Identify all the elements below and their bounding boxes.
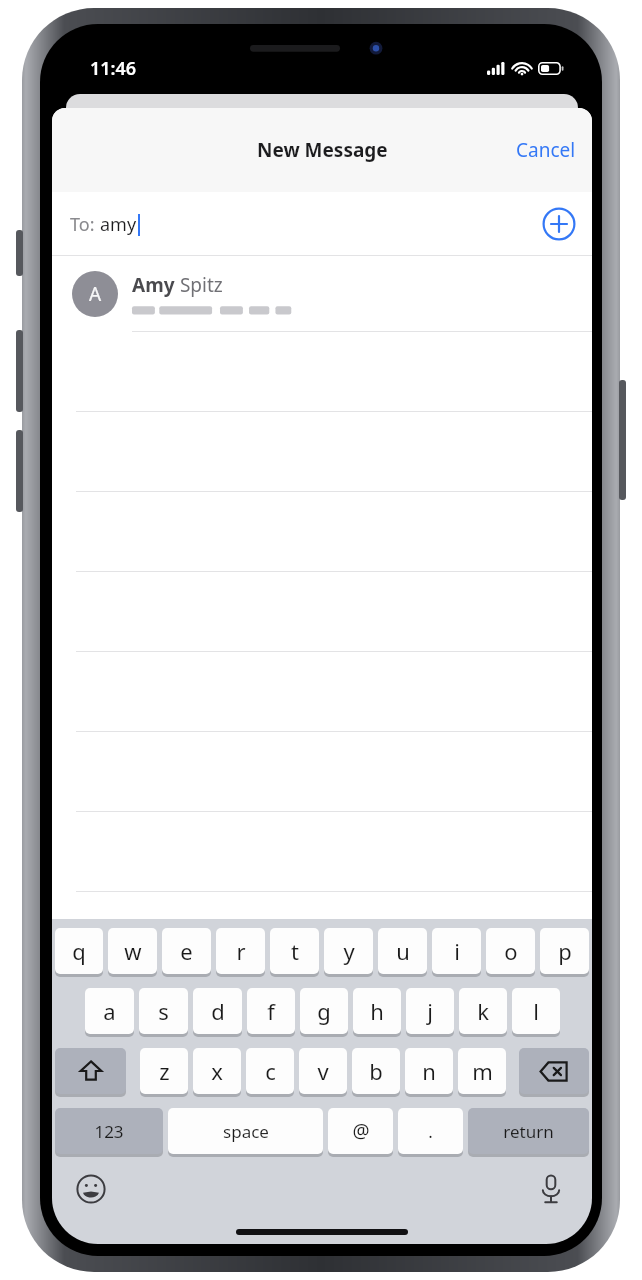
staticText: s	[158, 996, 169, 1026]
staticText: Spitz	[175, 272, 223, 298]
button[interactable]: r	[216, 928, 265, 978]
button[interactable]: q	[55, 928, 103, 978]
staticText: u	[396, 936, 410, 966]
button[interactable]: w	[108, 928, 157, 978]
button[interactable]: a	[85, 988, 134, 1038]
button[interactable]: 123	[55, 1108, 163, 1158]
staticText: q	[72, 936, 86, 966]
staticText: New Message	[257, 137, 388, 163]
button[interactable]: space	[168, 1108, 323, 1158]
button[interactable]: l	[512, 988, 560, 1038]
staticText: 11:46	[90, 56, 137, 81]
staticText: d	[211, 996, 225, 1026]
staticText: To:	[70, 212, 100, 237]
button[interactable]: t	[270, 928, 319, 978]
button[interactable]: g	[300, 988, 348, 1038]
staticText: j	[427, 996, 433, 1026]
button[interactable]: x	[193, 1048, 241, 1098]
button[interactable]: @	[328, 1108, 393, 1158]
button[interactable]: f	[247, 988, 295, 1038]
button[interactable]: z	[140, 1048, 188, 1098]
button[interactable]: A	[52, 256, 592, 332]
staticText: g	[317, 996, 331, 1026]
button[interactable]: h	[353, 988, 401, 1038]
staticText: p	[558, 936, 572, 966]
staticText: n	[422, 1056, 436, 1086]
button[interactable]: v	[299, 1048, 347, 1098]
staticText: x	[211, 1056, 223, 1086]
button[interactable]: k	[459, 988, 507, 1038]
button[interactable]: b	[352, 1048, 400, 1098]
staticText: v	[317, 1056, 329, 1086]
staticText: h	[370, 996, 384, 1026]
button[interactable]: s	[139, 988, 188, 1038]
staticText: i	[454, 936, 460, 966]
staticText: r	[236, 936, 246, 966]
staticText: A	[89, 281, 102, 307]
staticText: space	[223, 1120, 269, 1143]
button[interactable]: e	[162, 928, 211, 978]
button[interactable]: i	[432, 928, 481, 978]
staticText: y	[343, 936, 355, 966]
staticText: m	[472, 1056, 493, 1086]
button[interactable]: j	[406, 988, 454, 1038]
button[interactable]: Shift	[55, 1048, 126, 1098]
button[interactable]: u	[378, 928, 427, 978]
button[interactable]: .	[398, 1108, 463, 1158]
button[interactable]: o	[486, 928, 535, 978]
staticText: l	[533, 996, 539, 1026]
button[interactable]: Cancel	[500, 127, 592, 173]
staticText: @	[352, 1118, 370, 1144]
button[interactable]: n	[405, 1048, 453, 1098]
staticText: Amy	[132, 272, 175, 298]
button[interactable]: Add contact	[542, 207, 576, 241]
staticText: .	[428, 1120, 433, 1143]
button[interactable]: return	[468, 1108, 589, 1158]
staticText: t	[291, 936, 299, 966]
staticText: e	[180, 936, 193, 966]
button[interactable]: y	[324, 928, 373, 978]
staticText: f	[267, 996, 275, 1026]
staticText: c	[265, 1056, 276, 1086]
staticText: amy	[100, 212, 137, 237]
staticText: w	[124, 936, 142, 966]
staticText: return	[503, 1120, 554, 1143]
button[interactable]: p	[540, 928, 589, 978]
staticText: b	[369, 1056, 383, 1086]
staticText: a	[103, 996, 116, 1026]
button[interactable]: Dictation	[534, 1172, 568, 1206]
staticText: k	[477, 996, 489, 1026]
staticText: o	[504, 936, 518, 966]
button[interactable]: Emoji	[74, 1172, 108, 1206]
staticText: Cancel	[516, 137, 576, 163]
button[interactable]: m	[458, 1048, 506, 1098]
staticText: z	[159, 1056, 170, 1086]
button[interactable]: c	[246, 1048, 294, 1098]
staticText: 123	[94, 1120, 124, 1143]
button[interactable]: d	[193, 988, 242, 1038]
button[interactable]: Backspace	[519, 1048, 589, 1098]
